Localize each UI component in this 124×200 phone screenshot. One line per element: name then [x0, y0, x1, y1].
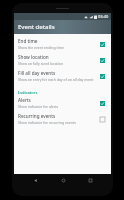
button[interactable]: Recent apps	[85, 175, 95, 185]
button[interactable]: Disabled	[98, 115, 107, 124]
button[interactable]: Show location	[14, 52, 111, 68]
button[interactable]: Enabled	[98, 40, 107, 49]
staticText: Fill all day events	[18, 70, 56, 76]
staticText: Recurring events	[18, 113, 56, 119]
button[interactable]: Fill all day events	[14, 68, 111, 84]
staticText: Event details	[18, 23, 55, 31]
button[interactable]: Enabled	[98, 56, 107, 65]
button[interactable]: Alerts	[14, 95, 111, 111]
button[interactable]: Enabled	[98, 99, 107, 108]
staticText: Show an fully sized location	[18, 61, 64, 66]
staticText: Indicators	[18, 90, 38, 95]
staticText: Show indicator for recurring events	[18, 120, 76, 125]
staticText: 03:40	[98, 14, 109, 19]
staticText: Show the event ending time	[18, 45, 64, 50]
button[interactable]: Back	[30, 175, 40, 185]
staticText: Show location	[18, 54, 49, 60]
staticText: Alerts	[18, 97, 31, 103]
button[interactable]: End time	[14, 36, 111, 52]
button[interactable]: Enabled	[98, 72, 107, 81]
button[interactable]: Recurring events	[14, 111, 111, 127]
staticText: End time	[18, 38, 38, 44]
staticText: Show indicator for alerts	[18, 104, 59, 109]
staticText: Show an entry for each day of an all day…	[18, 77, 94, 82]
button[interactable]: Home	[58, 175, 68, 185]
